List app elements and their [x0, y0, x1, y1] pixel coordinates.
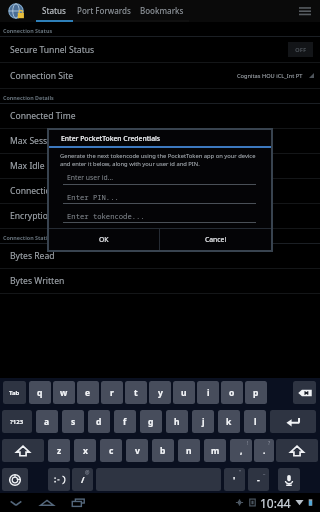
staticText: '	[233, 474, 236, 486]
button[interactable]: Recents	[67, 493, 89, 512]
staticText: Encryption	[10, 210, 54, 222]
button[interactable]: More options	[292, 0, 318, 22]
button[interactable]: p	[245, 381, 267, 404]
button[interactable]: mic	[278, 468, 300, 491]
button[interactable]: k	[218, 410, 240, 433]
button[interactable]: Bytes Written	[0, 269, 320, 294]
button[interactable]: t	[125, 381, 147, 404]
button[interactable]: r	[101, 381, 123, 404]
button[interactable]: Encryption	[0, 204, 320, 229]
staticText: !	[247, 440, 249, 447]
button[interactable]: Max Idle Time	[0, 154, 320, 179]
staticText: @	[85, 469, 90, 476]
button[interactable]: h	[166, 410, 188, 433]
staticText: Connection Status	[3, 27, 53, 34]
button[interactable]: Home	[36, 493, 58, 512]
button[interactable]: y	[149, 381, 171, 404]
staticText: OFF	[295, 46, 307, 54]
staticText: q	[37, 387, 43, 399]
button[interactable]: Connected Time	[0, 104, 320, 129]
button[interactable]: f	[114, 410, 136, 433]
staticText: g	[148, 416, 154, 428]
button[interactable]: shift	[276, 439, 318, 462]
button[interactable]: Port Forwards	[73, 0, 134, 22]
button[interactable]: enter	[270, 410, 316, 433]
button[interactable]: Enter PIN...	[63, 190, 256, 209]
button[interactable]: Enter tokencode...	[63, 209, 256, 228]
staticText: Connected Time	[10, 110, 76, 122]
button[interactable]: settings	[2, 468, 28, 491]
button[interactable]: Secure Tunnel Status	[0, 37, 320, 63]
button[interactable]: b	[152, 439, 174, 462]
staticText: b	[160, 445, 166, 457]
button[interactable]: s	[62, 410, 84, 433]
staticText: Generate the next tokencode using the Po…	[60, 152, 262, 167]
staticText: i	[207, 387, 210, 399]
staticText: o	[229, 387, 235, 399]
button[interactable]: del	[293, 381, 316, 404]
staticText: OK	[99, 235, 109, 244]
staticText: u	[181, 387, 187, 399]
staticText: r	[110, 387, 114, 399]
button[interactable]: z	[48, 439, 70, 462]
button[interactable]: c	[100, 439, 122, 462]
staticText: a	[44, 416, 50, 428]
button[interactable]: .	[254, 439, 274, 462]
staticText: Connection Details	[3, 94, 54, 101]
staticText: _	[263, 469, 266, 476]
button[interactable]: Cancel	[160, 229, 271, 250]
staticText: Cancel	[205, 235, 227, 244]
button[interactable]: -	[248, 468, 269, 491]
button[interactable]: e	[77, 381, 99, 404]
button[interactable]: w	[53, 381, 75, 404]
button[interactable]: ,	[230, 439, 252, 462]
button[interactable]: n	[178, 439, 200, 462]
button[interactable]: q	[29, 381, 51, 404]
button[interactable]: j	[192, 410, 214, 433]
staticText: m	[211, 445, 220, 457]
staticText: k	[226, 416, 232, 428]
staticText: t	[134, 387, 138, 399]
button[interactable]: Connection Site	[0, 63, 320, 89]
button[interactable]: Enter user id...	[63, 171, 256, 190]
staticText: Connection Mode	[10, 185, 82, 197]
staticText: Enter PocketToken Credentials	[61, 134, 161, 143]
button[interactable]: a	[36, 410, 58, 433]
button[interactable]: Tab	[3, 381, 26, 404]
button[interactable]: v	[126, 439, 148, 462]
button[interactable]: u	[173, 381, 195, 404]
button[interactable]: d	[88, 410, 110, 433]
button[interactable]: Bytes Read	[0, 244, 320, 269]
button[interactable]: g	[140, 410, 162, 433]
button[interactable]: i	[197, 381, 219, 404]
staticText: -	[257, 474, 260, 486]
staticText: z	[57, 445, 62, 457]
button[interactable]: Connection Mode	[0, 179, 320, 204]
button[interactable]: Back	[5, 493, 27, 512]
staticText: "	[239, 469, 242, 476]
button[interactable]: m	[204, 439, 226, 462]
button[interactable]: '	[224, 468, 245, 491]
button[interactable]: OK	[49, 229, 159, 250]
staticText: ,	[240, 445, 243, 457]
staticText: j	[202, 416, 205, 428]
button[interactable]: o	[221, 381, 243, 404]
button[interactable]: tabkey	[48, 468, 70, 491]
staticText: h	[174, 416, 180, 428]
staticText: Status	[42, 5, 67, 16]
staticText: l	[254, 416, 257, 428]
button[interactable]: /	[72, 468, 93, 491]
button[interactable]: Bookmarks	[134, 0, 189, 22]
staticText: .	[263, 445, 266, 457]
staticText: Connection Site	[10, 70, 74, 82]
button[interactable]: Max Session Time	[0, 129, 320, 154]
button[interactable]: x	[74, 439, 96, 462]
staticText: s	[71, 416, 76, 428]
button[interactable]: Status	[36, 0, 73, 22]
staticText: ?	[268, 440, 271, 447]
button[interactable]: shift	[2, 439, 44, 462]
button[interactable]: ?123	[2, 410, 32, 433]
button[interactable]: l	[244, 410, 266, 433]
staticText: c	[109, 445, 114, 457]
